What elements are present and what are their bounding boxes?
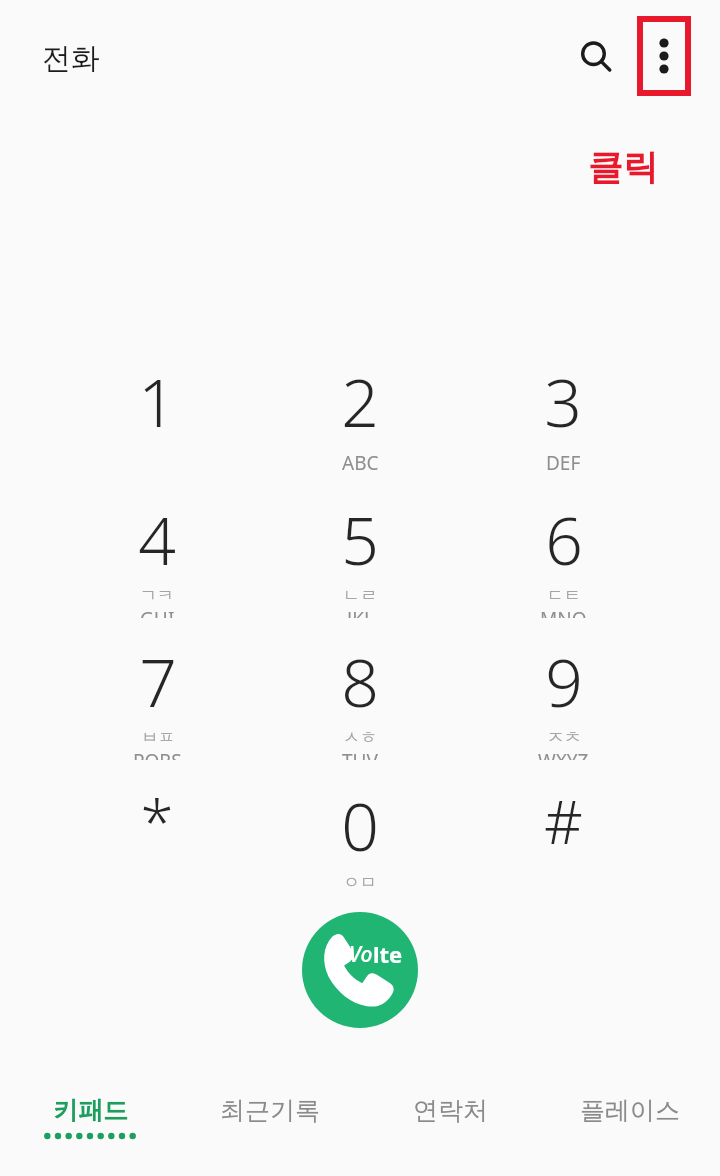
- staticText: 1: [138, 356, 176, 446]
- button[interactable]: 0: [265, 772, 455, 904]
- button[interactable]: 8: [265, 628, 455, 760]
- button[interactable]: 키패드: [0, 1070, 180, 1176]
- button[interactable]: 1: [62, 348, 252, 480]
- staticText: 플레이스: [580, 1095, 680, 1126]
- staticText: 2: [341, 356, 379, 446]
- button[interactable]: 3: [468, 348, 658, 480]
- button[interactable]: *: [62, 772, 252, 904]
- staticText: WXYZ: [538, 748, 589, 760]
- button[interactable]: 4: [62, 486, 252, 618]
- staticText: 클릭: [588, 145, 658, 189]
- button[interactable]: Search: [562, 23, 630, 91]
- staticText: 0: [341, 780, 379, 870]
- button[interactable]: 6: [468, 486, 658, 618]
- staticText: JKL: [347, 606, 374, 618]
- staticText: Vo: [349, 940, 373, 969]
- button[interactable]: More options: [637, 16, 691, 96]
- staticText: ㅈㅊ: [547, 727, 581, 748]
- staticText: 키패드: [53, 1095, 128, 1126]
- staticText: ㅅㅎ: [343, 727, 377, 748]
- staticText: 5: [341, 494, 379, 584]
- staticText: lte: [373, 939, 403, 969]
- staticText: MNO: [540, 606, 587, 618]
- staticText: #: [544, 780, 583, 862]
- staticText: 4: [138, 494, 176, 584]
- staticText: DEF: [546, 450, 581, 476]
- button[interactable]: 플레이스: [540, 1070, 720, 1176]
- button[interactable]: 5: [265, 486, 455, 618]
- staticText: ㄱㅋ: [140, 585, 174, 606]
- staticText: PQRS: [133, 748, 182, 760]
- staticText: 7: [139, 636, 177, 726]
- staticText: 8: [341, 636, 379, 726]
- staticText: ㅂㅍ: [141, 727, 175, 748]
- staticText: 6: [545, 494, 583, 584]
- staticText: ㄷㅌ: [547, 585, 581, 606]
- staticText: ㅇㅁ: [343, 872, 377, 893]
- staticText: 전화: [42, 40, 100, 77]
- button[interactable]: 최근기록: [180, 1070, 360, 1176]
- button[interactable]: #: [468, 772, 658, 904]
- button[interactable]: Call: [302, 912, 418, 1028]
- staticText: 최근기록: [220, 1095, 320, 1126]
- staticText: TUV: [342, 748, 378, 760]
- staticText: GHI: [140, 606, 175, 618]
- staticText: *: [140, 780, 174, 862]
- button[interactable]: 2: [265, 348, 455, 480]
- staticText: ㄴㄹ: [343, 585, 377, 606]
- button[interactable]: 9: [468, 628, 658, 760]
- staticText: ABC: [342, 450, 379, 476]
- staticText: 3: [544, 356, 582, 446]
- button[interactable]: 연락처: [360, 1070, 540, 1176]
- staticText: 9: [545, 636, 583, 726]
- staticText: 연락처: [413, 1095, 488, 1126]
- button[interactable]: 7: [62, 628, 252, 760]
